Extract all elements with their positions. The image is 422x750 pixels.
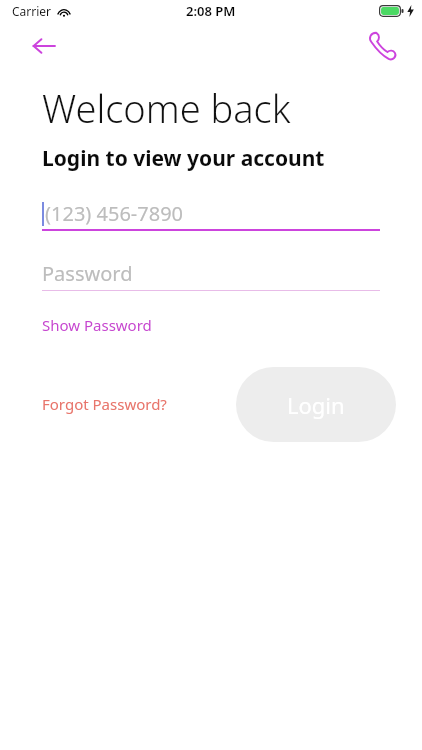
staticText: Login: [287, 390, 345, 420]
button[interactable]: (123) 456-7890: [42, 195, 380, 231]
button[interactable]: Show Password: [42, 315, 152, 335]
staticText: (123) 456-7890: [45, 200, 184, 227]
staticText: Login to view your account: [42, 144, 325, 173]
button[interactable]: Forgot Password?: [42, 394, 167, 414]
button[interactable]: Login: [236, 367, 396, 442]
button[interactable]: Call: [360, 24, 404, 68]
staticText: Forgot Password?: [42, 394, 167, 414]
staticText: Carrier: [12, 3, 52, 19]
button[interactable]: Back: [24, 26, 64, 66]
staticText: Show Password: [42, 315, 152, 335]
staticText: Welcome back: [42, 82, 291, 134]
staticText: 2:08 PM: [186, 2, 236, 20]
button[interactable]: Password: [42, 255, 380, 291]
staticText: Password: [42, 260, 133, 287]
